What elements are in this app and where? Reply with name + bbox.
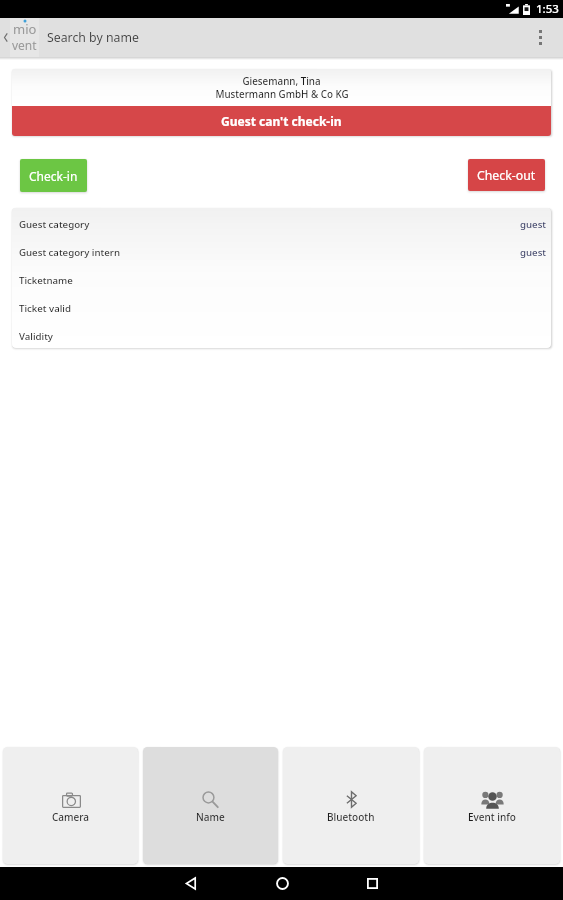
button[interactable]: More options — [521, 18, 563, 57]
staticText: Bluetooth — [327, 810, 375, 824]
staticText: vent — [12, 37, 37, 53]
staticText: guest — [520, 218, 547, 231]
staticText: Guest category — [19, 218, 90, 231]
staticText: Camera — [52, 810, 90, 824]
button[interactable]: Home — [257, 867, 307, 900]
staticText: Ticketname — [19, 274, 73, 287]
button[interactable]: Name — [143, 747, 278, 864]
staticText: Validity — [19, 330, 53, 343]
button[interactable]: Back — [166, 867, 216, 900]
button[interactable]: Check-in — [20, 159, 87, 192]
staticText: Giesemann, Tina — [242, 75, 321, 88]
button[interactable]: Ticketname — [19, 274, 547, 302]
staticText: Mustermann GmbH & Co KG — [215, 88, 349, 101]
staticText: guest — [520, 246, 547, 259]
staticText: Check-in — [29, 168, 78, 184]
staticText: Name — [196, 810, 225, 824]
button[interactable]: Ticket valid — [19, 302, 547, 330]
staticText: Guest category intern — [19, 246, 120, 259]
staticText: 1:53 — [536, 1, 559, 17]
button[interactable]: Guest can't check-in — [12, 106, 551, 136]
button[interactable]: Navigate up — [0, 18, 44, 57]
staticText: Event info — [468, 810, 516, 824]
button[interactable]: Event info — [424, 747, 560, 864]
staticText: Guest can't check-in — [221, 113, 342, 129]
button[interactable]: Validity — [19, 330, 547, 348]
button[interactable]: Recent apps — [347, 867, 397, 900]
button[interactable]: Guest category intern — [19, 246, 547, 274]
staticText: mio — [13, 20, 37, 38]
button[interactable]: Camera — [3, 747, 138, 864]
button[interactable]: Check-out — [468, 159, 545, 191]
staticText: Check-out — [477, 167, 536, 184]
button[interactable]: Guest category — [19, 218, 547, 246]
staticText: Ticket valid — [19, 302, 71, 315]
staticText: Search by name — [47, 29, 139, 46]
button[interactable]: Bluetooth — [283, 747, 419, 864]
